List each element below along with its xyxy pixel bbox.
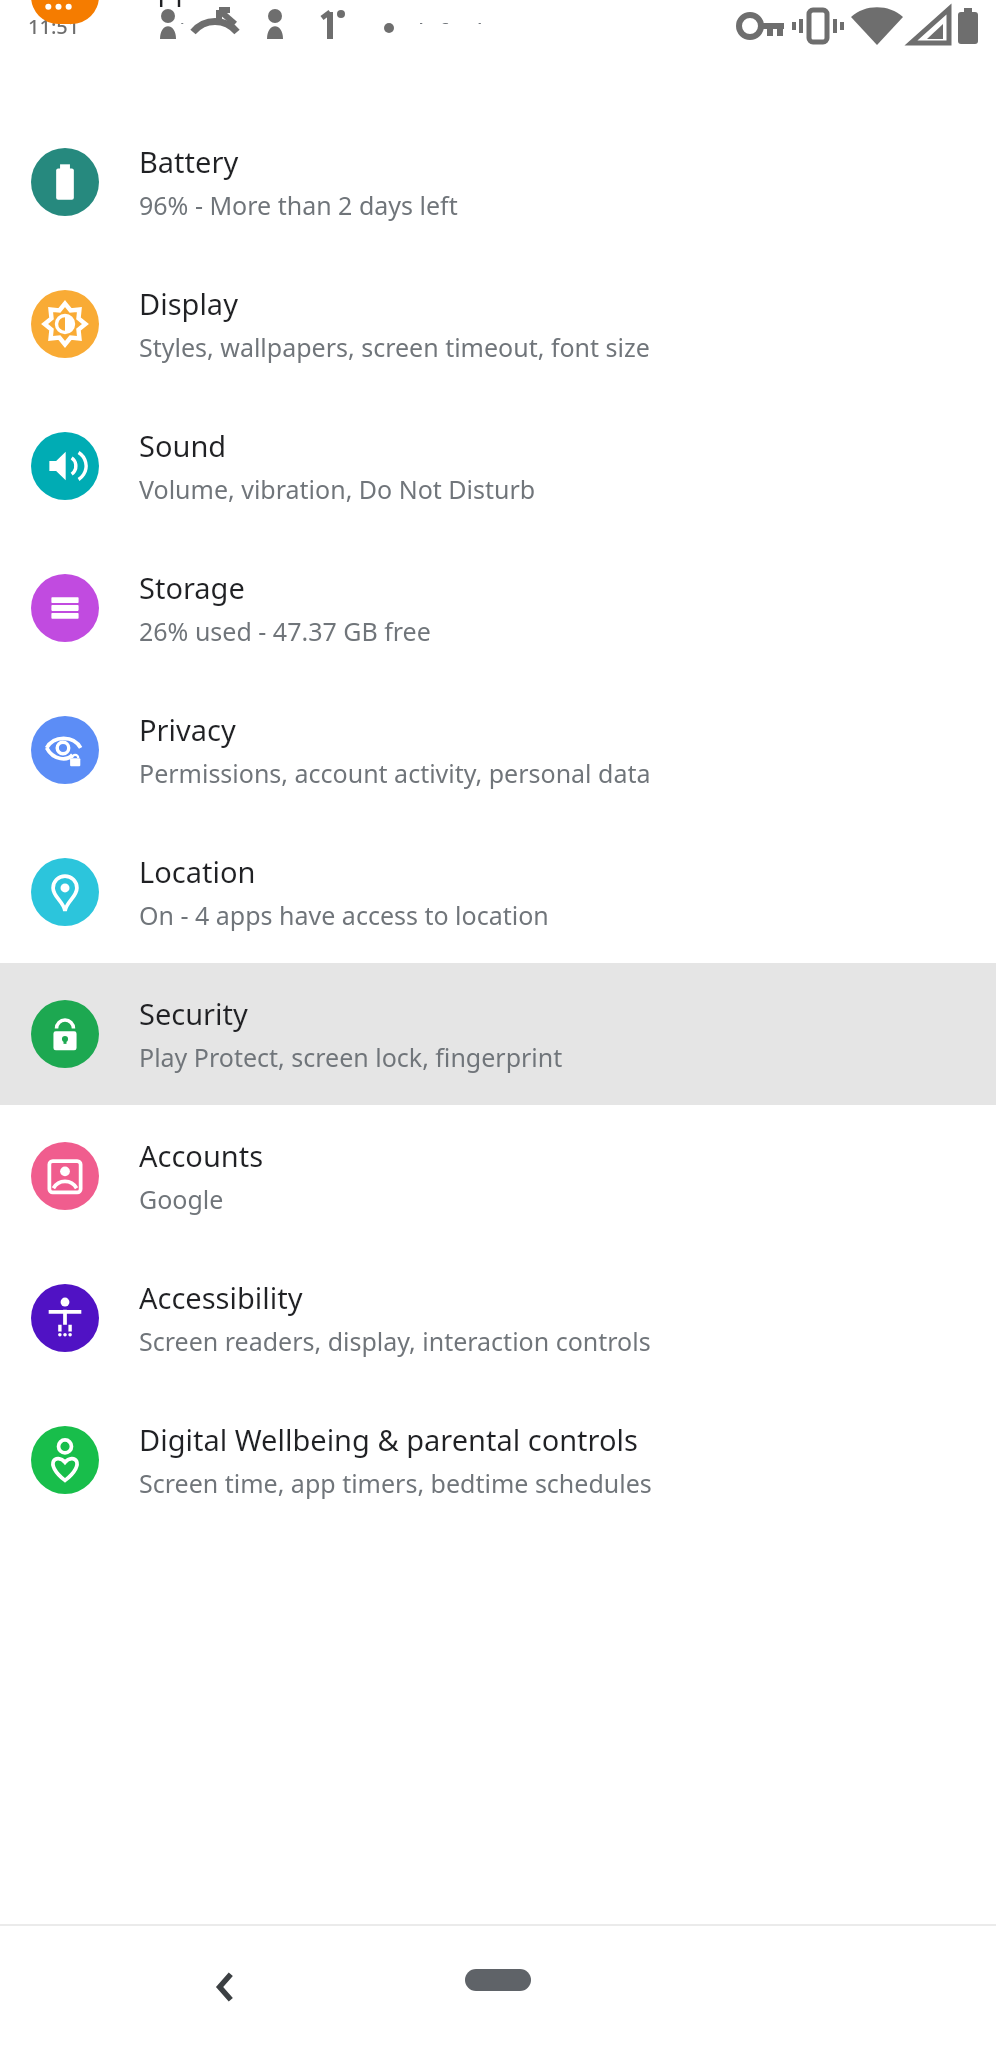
staticText: Play Protect, screen lock, fingerprint <box>139 1040 563 1074</box>
button[interactable]: Home <box>462 1962 534 1998</box>
button[interactable]: Accounts <box>0 1105 996 1247</box>
staticText: Screen readers, display, interaction con… <box>139 1324 651 1358</box>
staticText: Sound <box>139 426 227 465</box>
staticText: Digital Wellbeing & parental controls <box>139 1420 638 1459</box>
staticText: Google <box>139 1182 224 1216</box>
button[interactable]: Digital Wellbeing & parental controls <box>0 1389 996 1531</box>
button[interactable]: Battery <box>0 111 996 253</box>
staticText: Styles, wallpapers, screen timeout, font… <box>139 330 650 364</box>
staticText: Battery <box>139 142 239 181</box>
button[interactable]: Storage <box>0 537 996 679</box>
staticText: Assistant, recent apps, default apps <box>139 15 556 24</box>
staticText: 11:51 <box>28 13 80 40</box>
staticText: Volume, vibration, Do Not Disturb <box>139 472 536 506</box>
button[interactable]: Accessibility <box>0 1247 996 1389</box>
button[interactable]: Privacy <box>0 679 996 821</box>
staticText: Permissions, account activity, personal … <box>139 756 651 790</box>
staticText: Privacy <box>139 710 236 749</box>
button[interactable]: Display <box>0 253 996 395</box>
staticText: Location <box>139 852 256 891</box>
staticText: Storage <box>139 568 245 607</box>
staticText: Accounts <box>139 1136 264 1175</box>
button[interactable]: Sound <box>0 395 996 537</box>
staticText: 26% used - 47.37 GB free <box>139 614 431 648</box>
button[interactable]: Back <box>190 1951 262 2023</box>
staticText: Apps & notifications <box>139 0 412 8</box>
staticText: Display <box>139 284 238 323</box>
button[interactable]: Location <box>0 821 996 963</box>
staticText: 96% - More than 2 days left <box>139 188 458 222</box>
staticText: On - 4 apps have access to location <box>139 898 549 932</box>
staticText: Security <box>139 994 248 1033</box>
button[interactable]: Security <box>0 963 996 1105</box>
staticText: Screen time, app timers, bedtime schedul… <box>139 1466 652 1500</box>
staticText: Accessibility <box>139 1278 303 1317</box>
